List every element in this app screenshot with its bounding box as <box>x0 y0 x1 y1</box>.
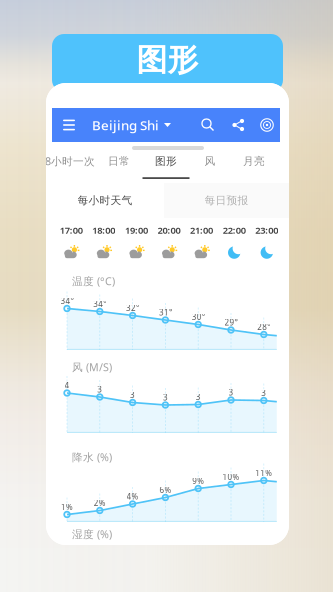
staticText: 17:00 <box>60 224 83 236</box>
staticText: 4% <box>127 491 139 502</box>
staticText: 3 <box>261 387 266 398</box>
staticText: 19:00 <box>125 224 148 236</box>
staticText: 每小时天气 <box>77 194 132 207</box>
staticText: 月亮 <box>243 154 265 168</box>
button[interactable]: Globe <box>254 108 280 142</box>
staticText: 图形 <box>136 41 198 79</box>
staticText: 3 <box>97 384 102 395</box>
staticText: 30° <box>192 311 205 322</box>
staticText: 8小时一次 <box>45 154 95 168</box>
staticText: 11% <box>255 467 272 478</box>
button[interactable]: 风 <box>190 145 230 179</box>
button[interactable]: Share <box>225 108 251 142</box>
staticText: 图形 <box>155 154 177 168</box>
button[interactable]: 8小时一次 <box>42 145 98 179</box>
button[interactable]: 每小时天气 <box>46 183 164 218</box>
staticText: 23:00 <box>255 224 278 236</box>
staticText: 风 (M/S) <box>72 360 112 374</box>
staticText: 3 <box>130 389 135 400</box>
staticText: Beijing Shi <box>92 116 159 134</box>
staticText: 2% <box>94 497 106 508</box>
button[interactable]: 月亮 <box>234 145 274 179</box>
button[interactable]: 日常 <box>99 145 139 179</box>
staticText: 6% <box>159 484 171 495</box>
staticText: 温度 (°C) <box>72 274 115 288</box>
staticText: 34° <box>93 298 106 309</box>
staticText: 降水 (%) <box>72 450 112 464</box>
staticText: 9% <box>192 475 204 486</box>
staticText: 3 <box>228 387 233 398</box>
staticText: 湿度 (%) <box>72 527 112 541</box>
staticText: 20:00 <box>157 224 180 236</box>
button[interactable]: Beijing Shi <box>88 108 175 142</box>
staticText: 31° <box>159 307 172 318</box>
staticText: 21:00 <box>190 224 213 236</box>
staticText: 3 <box>163 392 168 403</box>
staticText: 29° <box>224 317 237 328</box>
staticText: 18:00 <box>92 224 115 236</box>
staticText: 3 <box>196 391 201 402</box>
staticText: 1% <box>61 501 73 512</box>
staticText: 34° <box>60 295 73 306</box>
staticText: 每日预报 <box>204 194 248 207</box>
staticText: 4 <box>64 380 69 391</box>
button[interactable]: Menu <box>56 108 82 142</box>
staticText: 日常 <box>108 154 130 168</box>
staticText: 28° <box>257 321 270 332</box>
staticText: 风 <box>204 154 215 168</box>
staticText: 10% <box>222 471 239 482</box>
button[interactable]: Search <box>195 108 221 142</box>
staticText: 22:00 <box>223 224 246 236</box>
button[interactable]: 每日预报 <box>164 183 289 218</box>
button[interactable]: 图形 <box>142 145 189 179</box>
staticText: 32° <box>126 302 139 313</box>
